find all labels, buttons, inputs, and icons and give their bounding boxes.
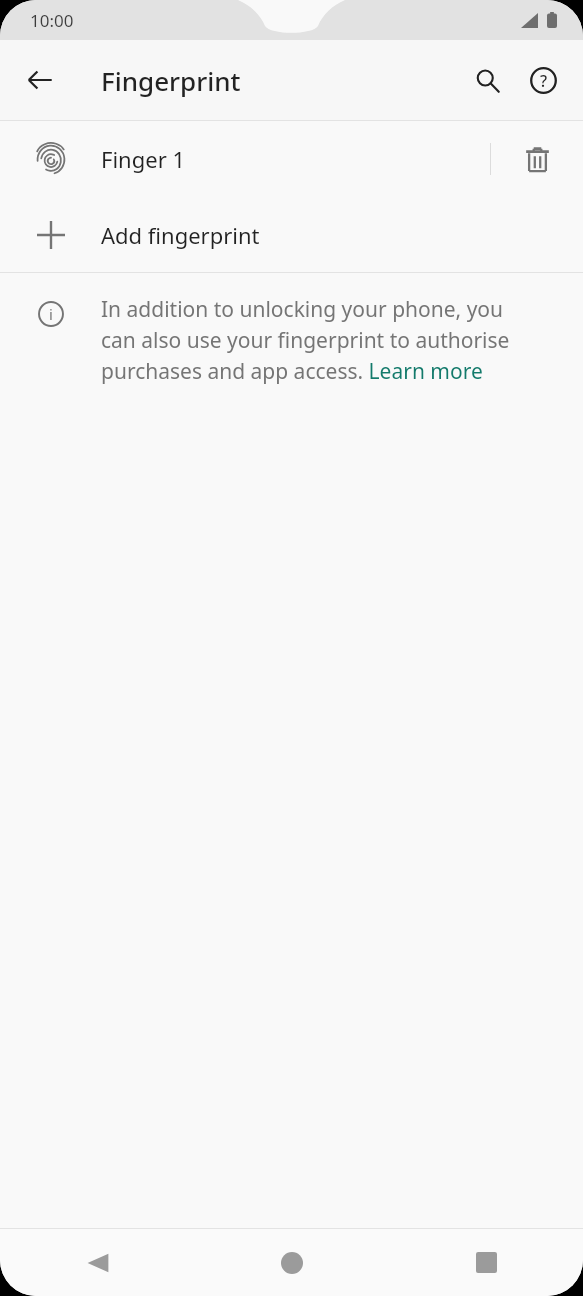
- button[interactable]: In addition to unlocking your phone, you…: [101, 295, 543, 385]
- button[interactable]: Recent apps: [389, 1229, 583, 1296]
- button[interactable]: Home: [195, 1229, 389, 1296]
- staticText: 10:00: [30, 9, 74, 32]
- button[interactable]: Finger 1: [0, 121, 583, 197]
- staticText: Add fingerprint: [101, 220, 260, 250]
- staticText: ?: [540, 70, 548, 92]
- button[interactable]: Add fingerprint: [0, 197, 583, 272]
- staticText: Fingerprint: [101, 63, 241, 98]
- staticText: i: [49, 304, 53, 324]
- staticText: Finger 1: [101, 144, 490, 174]
- button[interactable]: Delete fingerprint: [491, 121, 583, 197]
- button[interactable]: Help: [515, 52, 571, 108]
- button[interactable]: Back: [0, 1229, 195, 1296]
- button[interactable]: Back: [12, 52, 68, 108]
- button[interactable]: Search: [459, 52, 515, 108]
